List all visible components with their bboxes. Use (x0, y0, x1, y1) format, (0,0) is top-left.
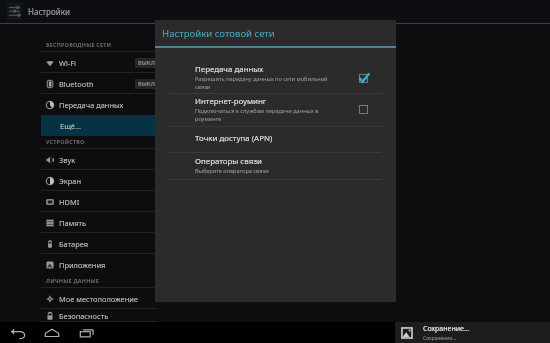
button[interactable]: Батарея (41, 233, 157, 254)
button[interactable]: Точки доступа (APN) (195, 133, 369, 144)
staticText: Подключаться к службам передачи данных в (195, 107, 319, 115)
staticText: Батарея (59, 239, 89, 249)
staticText: Настройки сотовой сети (162, 27, 275, 40)
button[interactable]: Приложения (41, 254, 157, 275)
button[interactable]: Ещё... (41, 115, 157, 136)
staticText: Операторы связи (195, 156, 262, 167)
staticText: Разрешить передачу данных по сети мобиль… (195, 75, 328, 83)
staticText: Звук (59, 155, 76, 165)
staticText: Выберите оператора связи (195, 167, 269, 175)
button[interactable]: Звук (41, 149, 157, 170)
button[interactable]: Settings (7, 3, 22, 20)
staticText: связи (195, 83, 211, 91)
button[interactable]: HDMI (41, 191, 157, 212)
button[interactable]: Экран (41, 170, 157, 191)
button[interactable]: Wi-Fi (41, 52, 157, 73)
button[interactable]: Безопасность (41, 309, 157, 322)
staticText: УСТРОЙСТВО (46, 138, 85, 145)
staticText: Безопасность (59, 311, 109, 321)
staticText: БЕСПРОВОДНЫЕ СЕТИ (46, 41, 112, 48)
button[interactable]: Home (44, 325, 60, 341)
staticText: Экран (59, 176, 81, 186)
staticText: ЛИЧНЫЕ ДАННЫЕ (46, 277, 100, 284)
staticText: Приложения (59, 260, 106, 270)
button[interactable]: Операторы связи (195, 156, 369, 175)
staticText: роуминге (195, 115, 222, 123)
staticText: Настройки (28, 6, 70, 17)
staticText: Wi-Fi (59, 58, 77, 68)
button[interactable]: Мое местоположение (41, 288, 157, 309)
staticText: Передача данных (59, 100, 124, 110)
staticText: Точки доступа (APN) (195, 133, 273, 144)
staticText: HDMI (59, 197, 80, 207)
button[interactable]: Передача данных (41, 94, 157, 115)
button[interactable]: Сохранение... (395, 322, 550, 343)
staticText: Сохранение... (423, 324, 470, 334)
staticText: ВЫКЛ (138, 80, 155, 88)
staticText: Передача данных (195, 64, 264, 75)
button[interactable]: Память (41, 212, 157, 233)
staticText: Мое местоположение (59, 294, 138, 304)
staticText: Bluetooth (59, 79, 94, 89)
button[interactable]: Передача данных (195, 64, 369, 91)
button[interactable]: Интернет-роуминг (195, 96, 369, 123)
button[interactable]: Bluetooth (41, 73, 157, 94)
button[interactable]: Recents (79, 325, 95, 341)
button[interactable]: Back (10, 325, 26, 341)
staticText: ВЫКЛ (138, 59, 155, 67)
staticText: Интернет-роуминг (195, 96, 267, 107)
staticText: Сохранение... (423, 335, 457, 342)
staticText: Ещё... (60, 121, 81, 131)
staticText: Память (59, 218, 87, 228)
